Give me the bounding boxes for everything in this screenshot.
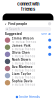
button[interactable]: James Park [3, 44, 53, 51]
staticText: 5 mutual friends [12, 55, 35, 58]
button[interactable]: Liam Taylor [3, 72, 53, 79]
staticText: ‹ [5, 21, 7, 26]
staticText: Find people [8, 22, 27, 26]
staticText: Sophia Davis [12, 79, 33, 83]
button[interactable]: Noah Brown [3, 58, 53, 65]
staticText: Invite friends [19, 95, 40, 99]
button[interactable]: Sophia Davis [3, 79, 53, 86]
button[interactable]: Emma Wilson [3, 37, 53, 44]
staticText: Ava Martinez [12, 65, 33, 69]
staticText: 2 mutual friends [12, 76, 35, 79]
staticText: Liam Taylor [12, 72, 31, 76]
staticText: 12 mutual friends [12, 40, 36, 44]
button[interactable]: Olivia Chen [3, 51, 53, 58]
staticText: 7 mutual friends [12, 69, 35, 72]
staticText: Noah Brown [12, 58, 31, 62]
staticText: Emma Wilson [12, 37, 34, 40]
staticText: friends [21, 7, 35, 12]
button[interactable]: Ava Martinez [3, 65, 53, 72]
staticText: James Park [12, 44, 31, 47]
staticText: 3 mutual friends [12, 62, 35, 65]
staticText: Search [9, 27, 20, 31]
button[interactable]: Invite friends [16, 94, 40, 100]
staticText: See all [41, 32, 51, 36]
staticText: Connect with [17, 2, 39, 6]
staticText: Olivia Chen [12, 51, 30, 54]
staticText: 9 mutual friends [12, 83, 35, 86]
staticText: Suggested [5, 32, 22, 36]
staticText: 8 mutual friends [12, 48, 35, 51]
